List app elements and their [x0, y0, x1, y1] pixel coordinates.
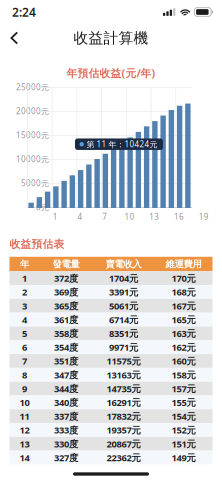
staticText: 年 — [20, 258, 29, 270]
staticText: 16291元 — [106, 396, 140, 409]
staticText: 152元 — [171, 424, 195, 436]
staticText: 3391元 — [109, 286, 138, 298]
staticText: 13 — [149, 211, 159, 222]
staticText: 8 — [22, 369, 27, 381]
staticText: 4 — [77, 211, 82, 222]
staticText: 發電量 — [52, 258, 79, 270]
staticText: 13 — [19, 438, 29, 450]
staticText: 5 — [22, 327, 27, 340]
staticText: 354度 — [54, 341, 78, 353]
staticText: 8351元 — [109, 327, 138, 340]
staticText: 14735元 — [106, 382, 140, 395]
staticText: 361度 — [54, 313, 78, 326]
staticText: 327度 — [54, 451, 78, 464]
staticText: 4 — [22, 313, 27, 326]
staticText: 19357元 — [106, 424, 140, 436]
staticText: 333度 — [54, 424, 78, 436]
staticText: 163元 — [171, 327, 195, 340]
staticText: 369度 — [54, 286, 78, 298]
staticText: 7 — [102, 211, 107, 222]
staticText: 賣電收入 — [105, 258, 141, 270]
staticText: 330度 — [54, 438, 78, 450]
staticText: 5000元 — [21, 178, 49, 188]
staticText: 160元 — [171, 355, 195, 367]
staticText: 維運費用 — [165, 258, 201, 270]
staticText: 372度 — [54, 272, 78, 284]
staticText: 1 — [53, 211, 58, 222]
staticText: 收益預估表 — [9, 238, 64, 251]
staticText: 351度 — [54, 355, 78, 367]
staticText: 25000元 — [16, 82, 49, 92]
staticText: 11575元 — [106, 355, 140, 367]
staticText: 340度 — [54, 396, 78, 409]
staticText: 1704元 — [109, 272, 138, 284]
staticText: 168元 — [171, 286, 195, 298]
staticText: 337度 — [54, 410, 78, 422]
staticText: 5061元 — [109, 300, 138, 312]
staticText: 6 — [22, 341, 27, 353]
staticText: 第 11 年：10424元 — [86, 139, 157, 149]
staticText: 344度 — [54, 382, 78, 395]
staticText: 14 — [19, 451, 29, 464]
staticText: 6714元 — [109, 313, 138, 326]
staticText: 收益計算機 — [73, 29, 148, 47]
staticText: 2:24 — [12, 4, 36, 20]
staticText: 0元 — [36, 202, 49, 212]
staticText: 1 — [22, 272, 27, 284]
staticText: 162元 — [171, 341, 195, 353]
staticText: 12 — [19, 424, 29, 436]
staticText: 10000元 — [16, 154, 49, 164]
staticText: 358度 — [54, 327, 78, 340]
staticText: 15000元 — [16, 130, 49, 140]
staticText: 19 — [199, 211, 209, 222]
staticText: 11 — [19, 410, 29, 422]
staticText: 149元 — [171, 451, 195, 464]
staticText: 13163元 — [106, 369, 140, 381]
staticText: 7 — [22, 355, 27, 367]
staticText: 20867元 — [106, 438, 140, 450]
staticText: 170元 — [171, 272, 195, 284]
staticText: 10 — [124, 211, 134, 222]
staticText: 154元 — [171, 410, 195, 422]
staticText: 17832元 — [106, 410, 140, 422]
staticText: 2 — [22, 286, 27, 298]
staticText: 22362元 — [106, 451, 140, 464]
button[interactable]: Back — [0, 24, 44, 52]
staticText: 9971元 — [109, 341, 138, 353]
staticText: 16 — [174, 211, 184, 222]
staticText: 151元 — [171, 438, 195, 450]
staticText: 9 — [22, 382, 27, 395]
staticText: 165元 — [171, 313, 195, 326]
staticText: 347度 — [54, 369, 78, 381]
staticText: 157元 — [171, 382, 195, 395]
staticText: 158元 — [171, 369, 195, 381]
staticText: 年預估收益(元/年) — [66, 66, 155, 80]
staticText: 167元 — [171, 300, 195, 312]
staticText: 20000元 — [16, 106, 49, 116]
staticText: 3 — [22, 300, 27, 312]
staticText: 10 — [19, 396, 29, 409]
staticText: 155元 — [171, 396, 195, 409]
staticText: 365度 — [54, 300, 78, 312]
